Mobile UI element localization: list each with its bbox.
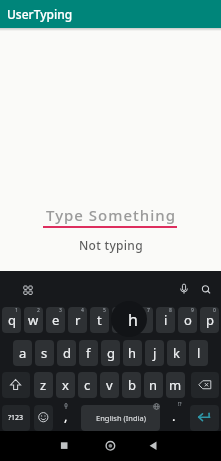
staticText: a — [19, 344, 27, 362]
button[interactable]: w — [24, 307, 43, 333]
staticText: x — [62, 376, 69, 394]
button[interactable]: y — [112, 307, 131, 333]
button[interactable] — [139, 433, 168, 459]
staticText: j — [153, 344, 157, 362]
button[interactable]: u — [134, 307, 153, 333]
button[interactable]: q — [2, 307, 21, 333]
button[interactable] — [81, 405, 160, 431]
button[interactable] — [190, 405, 219, 431]
button[interactable] — [43, 204, 177, 229]
staticText: z — [40, 376, 47, 394]
staticText: 1 — [15, 307, 18, 314]
button[interactable] — [49, 433, 78, 459]
button[interactable]: b — [122, 372, 141, 398]
button[interactable]: d — [57, 340, 76, 366]
button[interactable]: t — [90, 307, 109, 333]
button[interactable] — [2, 372, 30, 398]
button[interactable]: r — [68, 307, 87, 333]
staticText: h — [128, 344, 137, 362]
staticText: d — [63, 344, 71, 362]
button[interactable]: ?123 — [2, 405, 30, 431]
button[interactable]: l — [189, 340, 208, 366]
staticText: g — [107, 344, 115, 362]
staticText: 4 — [81, 307, 84, 314]
button[interactable]: o — [178, 307, 197, 333]
staticText: English (India) — [96, 413, 146, 423]
staticText: Not typing — [79, 237, 143, 253]
button[interactable]: z — [34, 372, 53, 398]
staticText: q — [8, 311, 16, 329]
staticText: !? — [178, 401, 182, 408]
button[interactable]: k — [167, 340, 186, 366]
staticText: h — [128, 309, 138, 329]
staticText: 8 — [169, 307, 172, 314]
button[interactable]: . — [164, 403, 183, 429]
staticText: u — [139, 311, 148, 329]
staticText: , — [64, 407, 68, 425]
button[interactable] — [96, 433, 125, 459]
button[interactable]: i — [156, 307, 175, 333]
staticText: w — [28, 311, 39, 329]
staticText: UserTyping — [7, 6, 73, 22]
staticText: s — [41, 344, 48, 362]
button[interactable]: m — [166, 372, 185, 398]
staticText: b — [128, 376, 136, 394]
staticText: n — [149, 376, 158, 394]
staticText: f — [86, 344, 91, 362]
button[interactable] — [17, 279, 39, 301]
staticText: l — [197, 344, 201, 362]
button[interactable] — [34, 405, 53, 431]
button[interactable]: p — [200, 307, 219, 333]
staticText: ?123 — [8, 413, 24, 423]
staticText: o — [184, 311, 192, 329]
staticText: . — [172, 407, 176, 425]
staticText: k — [173, 344, 180, 362]
button[interactable] — [191, 372, 219, 398]
button[interactable]: h — [123, 340, 142, 366]
button[interactable]: v — [100, 372, 119, 398]
staticText: p — [206, 311, 214, 329]
button[interactable]: n — [144, 372, 163, 398]
staticText: m — [169, 376, 182, 394]
staticText: r — [75, 311, 81, 329]
staticText: 3 — [59, 307, 62, 314]
staticText: 2 — [37, 307, 40, 314]
staticText: 0 — [213, 307, 216, 314]
button[interactable]: f — [79, 340, 98, 366]
button[interactable]: x — [56, 372, 75, 398]
staticText: 7 — [147, 307, 150, 314]
button[interactable] — [173, 279, 195, 301]
button[interactable]: g — [101, 340, 120, 366]
button[interactable]: a — [13, 340, 32, 366]
button[interactable]: s — [35, 340, 54, 366]
staticText: e — [52, 311, 60, 329]
button[interactable]: c — [78, 372, 97, 398]
staticText: 5 — [103, 307, 106, 314]
staticText: c — [84, 376, 91, 394]
button[interactable] — [195, 279, 217, 301]
staticText: i — [164, 311, 168, 329]
button[interactable]: e — [46, 307, 65, 333]
button[interactable]: j — [145, 340, 164, 366]
button[interactable]: , — [56, 403, 75, 429]
staticText: Type Something — [46, 205, 176, 225]
staticText: v — [106, 376, 113, 394]
staticText: t — [97, 311, 102, 329]
staticText: 9 — [191, 307, 194, 314]
